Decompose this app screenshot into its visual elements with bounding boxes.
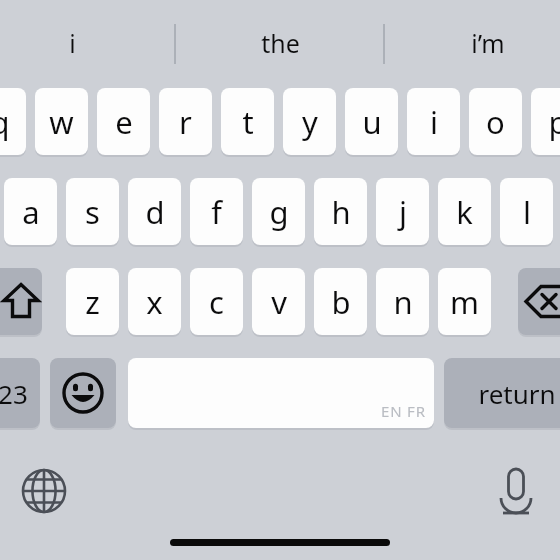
staticText: the	[261, 26, 300, 60]
button[interactable]: Shift	[0, 268, 42, 335]
button[interactable]: g	[252, 178, 305, 245]
button[interactable]: r	[159, 88, 212, 155]
staticText: z	[85, 281, 100, 323]
staticText: d	[145, 191, 165, 233]
staticText: u	[362, 101, 382, 143]
button[interactable]: j	[376, 178, 429, 245]
button[interactable]: Change keyboard	[16, 463, 72, 519]
staticText: 123	[0, 376, 28, 411]
button[interactable]: u	[345, 88, 398, 155]
staticText: s	[85, 191, 100, 233]
button[interactable]: h	[314, 178, 367, 245]
button[interactable]: l	[500, 178, 553, 245]
button[interactable]: t	[221, 88, 274, 155]
button[interactable]: k	[438, 178, 491, 245]
staticText: return	[478, 376, 556, 411]
button[interactable]: n	[376, 268, 429, 335]
staticText: v	[271, 281, 287, 323]
staticText: w	[49, 101, 74, 143]
button[interactable]: the	[192, 14, 368, 72]
staticText: n	[393, 281, 413, 323]
staticText: a	[22, 191, 40, 233]
staticText: f	[211, 191, 222, 233]
staticText: j	[399, 191, 407, 233]
button[interactable]: Emoji	[50, 358, 116, 428]
staticText: p	[548, 101, 560, 143]
staticText: i	[430, 101, 438, 143]
button[interactable]: q	[0, 88, 26, 155]
button[interactable]: Space	[128, 358, 434, 428]
button[interactable]: y	[283, 88, 336, 155]
button[interactable]: e	[97, 88, 150, 155]
staticText: c	[209, 281, 224, 323]
staticText: i	[69, 26, 76, 60]
button[interactable]: i	[0, 14, 160, 72]
staticText: q	[0, 101, 10, 143]
staticText: e	[115, 101, 133, 143]
staticText: r	[179, 101, 192, 143]
button[interactable]: m	[438, 268, 491, 335]
button[interactable]: w	[35, 88, 88, 155]
staticText: k	[456, 191, 473, 233]
button[interactable]: return	[444, 358, 560, 428]
button[interactable]: x	[128, 268, 181, 335]
staticText: i’m	[471, 26, 505, 60]
staticText: y	[302, 101, 318, 143]
button[interactable]: v	[252, 268, 305, 335]
button[interactable]: z	[66, 268, 119, 335]
button[interactable]: Dictation	[488, 463, 544, 519]
button[interactable]: Backspace	[518, 268, 560, 335]
button[interactable]: p	[531, 88, 560, 155]
button[interactable]: a	[4, 178, 57, 245]
staticText: t	[242, 101, 254, 143]
button[interactable]: i’m	[400, 14, 560, 72]
button[interactable]: s	[66, 178, 119, 245]
button[interactable]: 123	[0, 358, 40, 428]
staticText: o	[486, 101, 505, 143]
staticText: EN FR	[381, 401, 426, 421]
button[interactable]: i	[407, 88, 460, 155]
staticText: x	[146, 281, 163, 323]
staticText: h	[331, 191, 351, 233]
button[interactable]: c	[190, 268, 243, 335]
staticText: m	[450, 281, 479, 323]
button[interactable]: f	[190, 178, 243, 245]
button[interactable]: b	[314, 268, 367, 335]
button[interactable]: d	[128, 178, 181, 245]
staticText: l	[523, 191, 531, 233]
button[interactable]: o	[469, 88, 522, 155]
staticText: g	[269, 191, 289, 233]
staticText: b	[331, 281, 351, 323]
